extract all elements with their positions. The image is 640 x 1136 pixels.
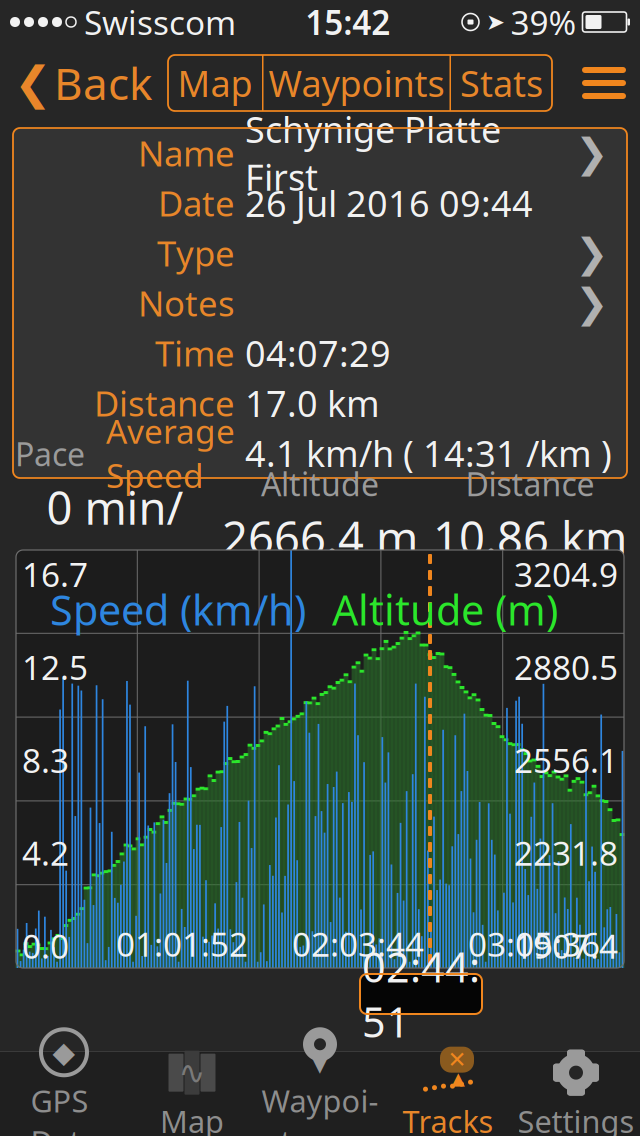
button[interactable]: ◆ — [0, 1052, 128, 1136]
button[interactable]: ✕ — [384, 1052, 512, 1136]
staticText: Distance — [465, 463, 594, 505]
staticText: Settings — [517, 1101, 634, 1136]
staticText: ∿ — [178, 1054, 205, 1091]
button[interactable]: ❮ — [0, 50, 152, 116]
staticText: Time — [155, 330, 235, 376]
staticText: Name — [138, 130, 235, 176]
staticText: Notes — [138, 280, 235, 326]
button[interactable]: Date — [13, 178, 627, 228]
button[interactable]: Notes — [13, 278, 627, 328]
staticText: Distance — [94, 380, 235, 426]
staticText: Map — [177, 59, 252, 107]
staticText: 03:05:36 — [468, 922, 600, 966]
staticText: 2231.8 — [514, 831, 618, 875]
staticText: Back — [54, 54, 152, 112]
staticText: 4.2 — [22, 831, 69, 875]
staticText: Altitude (m) — [332, 582, 558, 637]
staticText: Stats — [460, 59, 543, 107]
button[interactable]: Time — [13, 328, 627, 378]
staticText: Tracks — [402, 1101, 493, 1136]
staticText: Pace — [15, 433, 85, 475]
staticText: ❯ — [575, 230, 609, 276]
staticText: ❯ — [575, 130, 609, 176]
staticText: Map — [160, 1101, 224, 1136]
button[interactable]: 02:44:51 — [360, 974, 482, 1014]
staticText: Schynige Platte First — [245, 105, 501, 201]
staticText: 8.3 — [22, 738, 69, 782]
button[interactable]: ∿ — [128, 1052, 256, 1136]
staticText: 4.1 km/h ( 14:31 /km ) — [245, 429, 612, 477]
staticText: 02:44:51 — [362, 939, 480, 1049]
staticText: 01:01:52 — [116, 922, 248, 966]
staticText: ✕ — [447, 1047, 466, 1072]
staticText: 17.0 km — [245, 379, 380, 427]
button[interactable]: Average Speed — [13, 428, 627, 478]
staticText: ◆ — [52, 1036, 75, 1069]
staticText: 39% — [510, 0, 576, 44]
staticText: 3204.9 — [514, 552, 618, 596]
staticText: ▼ — [306, 1038, 333, 1077]
staticText: Type — [157, 230, 235, 276]
button[interactable]: Stats — [451, 55, 552, 111]
staticText: 2666.4 m — [222, 507, 418, 567]
staticText: ❮ — [14, 57, 52, 109]
staticText: 26 Jul 2016 09:44 — [245, 179, 533, 227]
staticText: 16.7 — [22, 552, 88, 596]
staticText: Swisscom — [84, 0, 236, 44]
staticText: GPS Data — [30, 1080, 97, 1136]
staticText: Average Speed — [106, 409, 235, 497]
staticText: ➤ — [486, 9, 505, 35]
button[interactable]: ▼ — [256, 1052, 384, 1136]
staticText: Waypoints — [268, 59, 444, 107]
button[interactable]: Name — [13, 128, 627, 178]
staticText: 0.0 — [22, 924, 69, 968]
staticText: 02:03:44 — [292, 922, 424, 966]
button[interactable]: Waypoints — [263, 55, 449, 111]
button[interactable]: Type — [13, 228, 627, 278]
staticText: ▲ — [451, 1069, 464, 1088]
button[interactable]: Map — [168, 55, 262, 111]
button[interactable]: Menu — [568, 55, 640, 111]
staticText: 2556.1 — [514, 738, 618, 782]
staticText: Altitude — [261, 463, 379, 505]
staticText: 2880.5 — [514, 645, 618, 689]
button[interactable]: Distance — [13, 378, 627, 428]
staticText: ❯ — [575, 280, 609, 326]
staticText: 1907.4 — [514, 924, 618, 968]
staticText: Waypoints — [261, 1080, 378, 1136]
staticText: 12.5 — [22, 645, 88, 689]
staticText: Speed (km/h) — [50, 582, 306, 637]
staticText: 04:07:29 — [245, 329, 391, 377]
button[interactable]: Settings — [512, 1052, 640, 1136]
staticText: 15:42 — [305, 0, 390, 44]
staticText: 0 min/km — [46, 477, 183, 597]
staticText: Date — [158, 180, 235, 226]
staticText: 10.86 km — [433, 507, 627, 567]
